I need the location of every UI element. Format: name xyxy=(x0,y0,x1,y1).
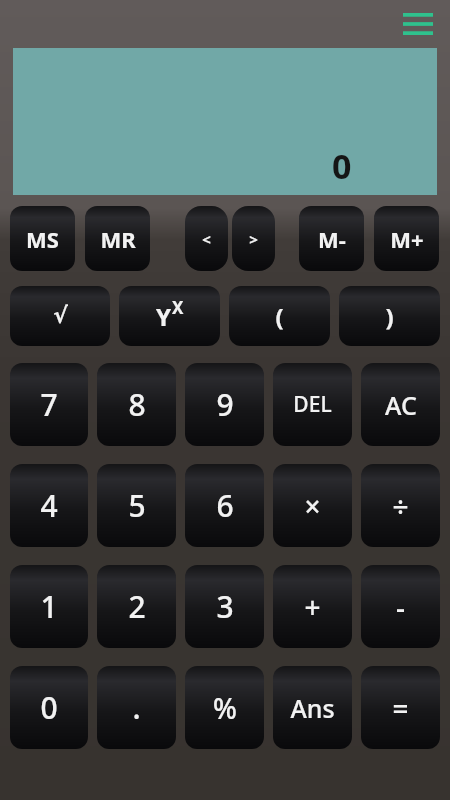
staticText: - xyxy=(396,588,405,626)
staticText: Ans xyxy=(290,691,335,725)
button[interactable]: 5 xyxy=(97,464,176,547)
button[interactable]: 3 xyxy=(185,565,264,648)
button[interactable]: ÷ xyxy=(361,464,440,547)
button[interactable]: × xyxy=(273,464,352,547)
button[interactable]: MS xyxy=(10,206,75,271)
button[interactable]: < xyxy=(185,206,228,271)
staticText: 1 xyxy=(40,586,58,627)
button[interactable]: ( xyxy=(229,286,330,346)
staticText: DEL xyxy=(293,390,332,419)
button[interactable]: = xyxy=(361,666,440,749)
button[interactable]: 2 xyxy=(97,565,176,648)
staticText: 7 xyxy=(40,384,58,425)
button[interactable]: DEL xyxy=(273,363,352,446)
button[interactable]: - xyxy=(361,565,440,648)
button[interactable]: 6 xyxy=(185,464,264,547)
staticText: ÷ xyxy=(392,487,409,525)
button[interactable]: ) xyxy=(339,286,440,346)
staticText: 6 xyxy=(216,485,234,526)
staticText: X xyxy=(172,296,184,319)
staticText: ) xyxy=(385,300,394,333)
staticText: 0 xyxy=(40,687,58,728)
button[interactable]: . xyxy=(97,666,176,749)
staticText: M+ xyxy=(390,224,424,254)
staticText: . xyxy=(132,687,141,728)
staticText: 0 xyxy=(332,143,352,189)
staticText: √ xyxy=(53,303,68,329)
staticText: 4 xyxy=(40,485,58,526)
button[interactable]: Ans xyxy=(273,666,352,749)
staticText: Y xyxy=(156,300,172,333)
button[interactable]: 4 xyxy=(10,464,88,547)
staticText: × xyxy=(304,487,321,525)
staticText: M- xyxy=(318,224,346,254)
staticText: + xyxy=(304,588,321,626)
button[interactable]: > xyxy=(232,206,275,271)
staticText: AC xyxy=(385,388,417,422)
staticText: MR xyxy=(100,224,136,254)
button[interactable]: % xyxy=(185,666,264,749)
button[interactable]: Menu xyxy=(396,2,440,46)
staticText: ( xyxy=(275,300,284,333)
button[interactable]: 9 xyxy=(185,363,264,446)
button[interactable]: √ xyxy=(10,286,110,346)
staticText: 2 xyxy=(128,586,146,627)
button[interactable]: 7 xyxy=(10,363,88,446)
staticText: > xyxy=(249,229,258,249)
staticText: MS xyxy=(26,224,59,254)
button[interactable]: M- xyxy=(299,206,364,271)
button[interactable]: MR xyxy=(85,206,150,271)
staticText: = xyxy=(392,689,409,727)
button[interactable]: AC xyxy=(361,363,440,446)
staticText: 8 xyxy=(128,384,146,425)
staticText: 9 xyxy=(216,384,234,425)
button[interactable]: 1 xyxy=(10,565,88,648)
staticText: 5 xyxy=(128,485,146,526)
button[interactable]: Y xyxy=(119,286,220,346)
staticText: < xyxy=(202,229,211,249)
button[interactable]: M+ xyxy=(374,206,439,271)
button[interactable]: + xyxy=(273,565,352,648)
staticText: % xyxy=(213,689,237,727)
button[interactable]: 8 xyxy=(97,363,176,446)
button[interactable]: 0 xyxy=(10,666,88,749)
staticText: 3 xyxy=(216,586,234,627)
